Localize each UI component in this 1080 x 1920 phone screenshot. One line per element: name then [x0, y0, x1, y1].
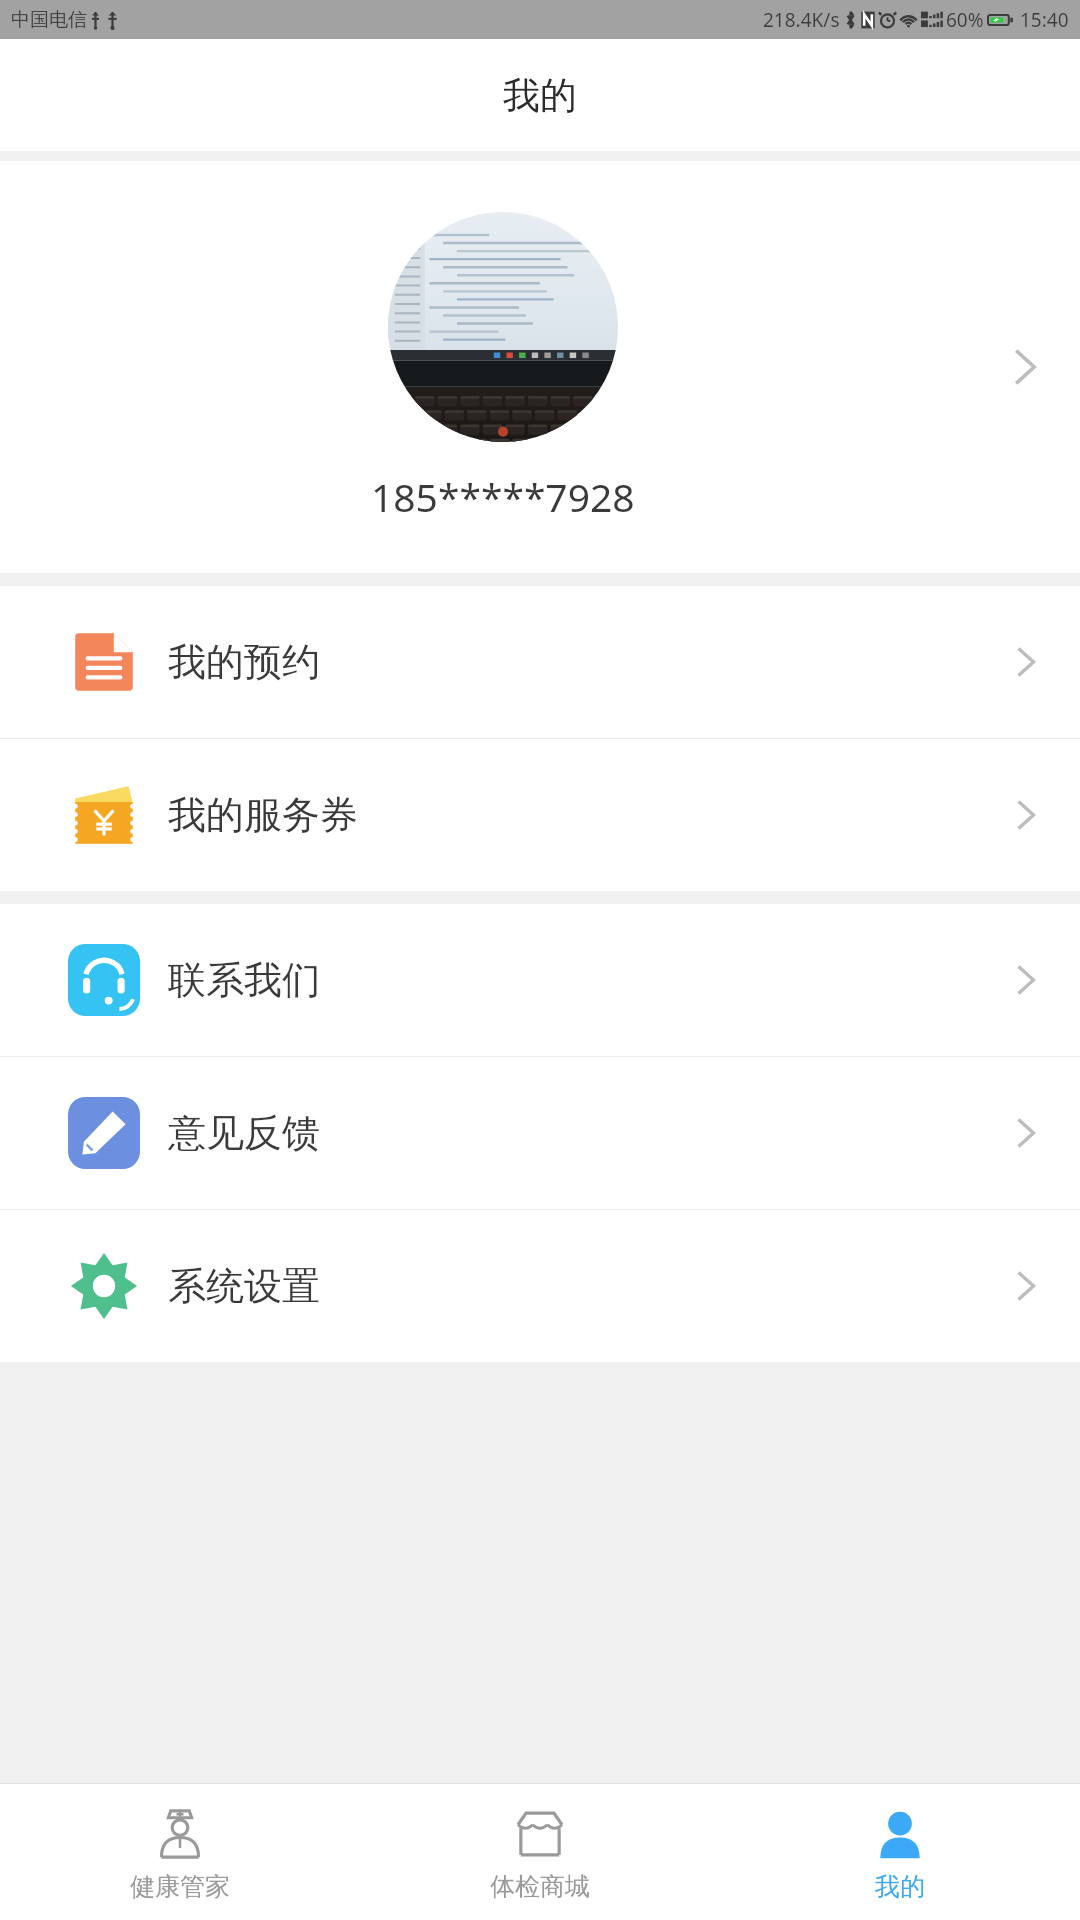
button[interactable]: 我的预约: [0, 586, 1080, 738]
button[interactable]: 联系我们: [0, 904, 1080, 1056]
button[interactable]: 健康管家: [0, 1791, 360, 1914]
button[interactable]: 意见反馈: [0, 1057, 1080, 1209]
staticText: 中国电信: [11, 8, 87, 32]
staticText: 我的预约: [168, 638, 320, 686]
button[interactable]: 体检商城: [360, 1791, 720, 1914]
staticText: 185*****7928: [371, 470, 635, 523]
staticText: 意见反馈: [168, 1109, 320, 1157]
staticText: 15:40: [1020, 7, 1069, 33]
staticText: 体检商城: [490, 1871, 590, 1902]
button[interactable]: 185*****7928: [0, 161, 1080, 573]
button[interactable]: 我的服务券: [0, 739, 1080, 891]
staticText: 我的: [503, 72, 577, 119]
staticText: 60%: [946, 7, 984, 33]
staticText: 系统设置: [168, 1262, 320, 1310]
staticText: 健康管家: [130, 1871, 230, 1902]
staticText: 我的服务券: [168, 791, 358, 839]
button[interactable]: 我的: [720, 1791, 1080, 1914]
button[interactable]: 系统设置: [0, 1210, 1080, 1362]
staticText: 我的: [875, 1871, 925, 1902]
staticText: 联系我们: [168, 956, 320, 1004]
staticText: 218.4K/s: [763, 7, 840, 33]
